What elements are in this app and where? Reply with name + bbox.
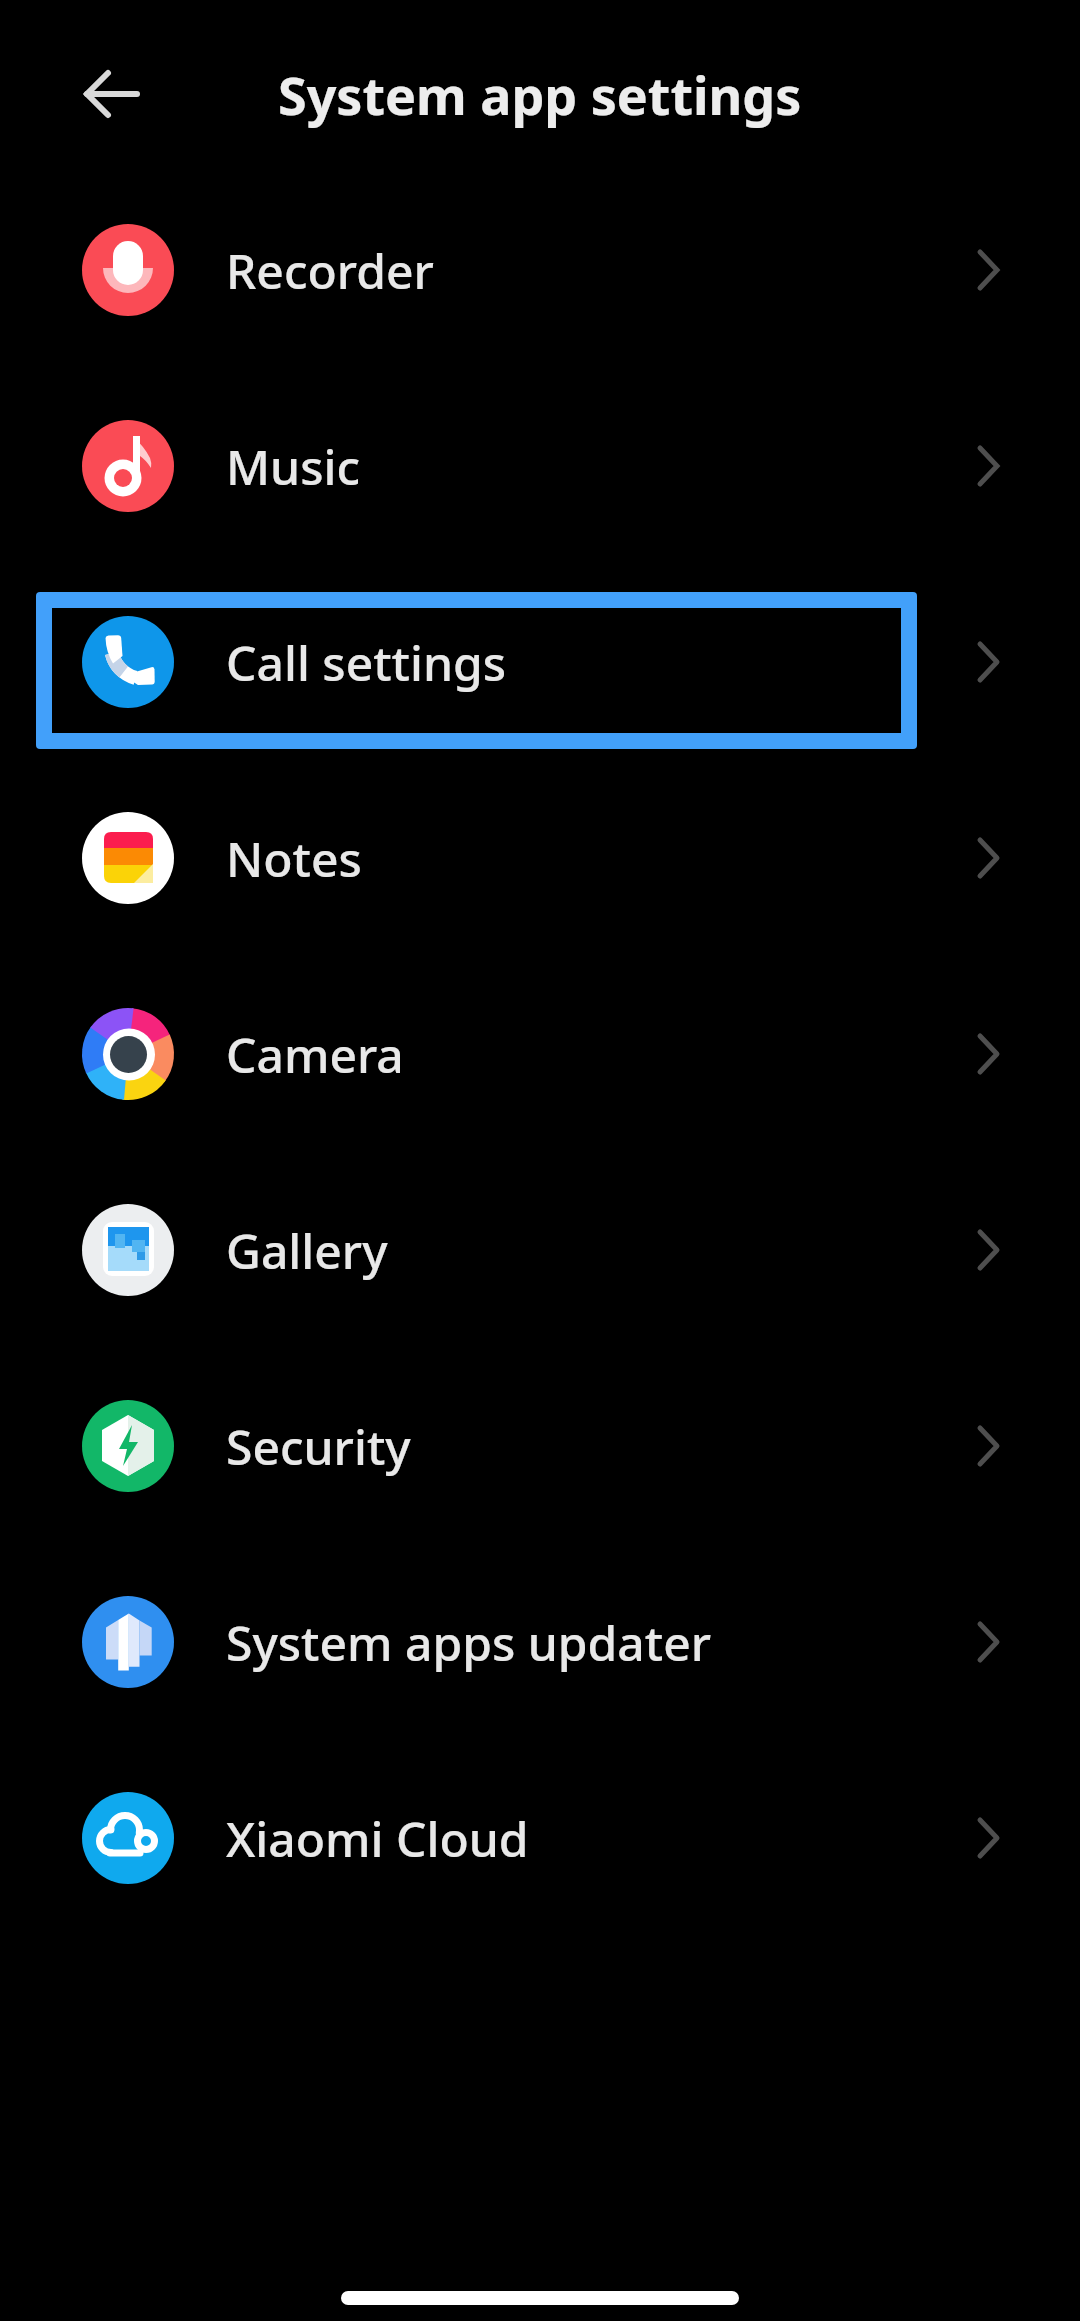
button[interactable]: Call settings — [0, 564, 1080, 760]
button[interactable]: Xiaomi Cloud — [0, 1740, 1080, 1936]
button[interactable]: Notes — [0, 760, 1080, 956]
button[interactable] — [62, 52, 162, 136]
staticText: Music — [226, 434, 361, 499]
staticText: System apps updater — [226, 1610, 712, 1675]
button[interactable]: Music — [0, 368, 1080, 564]
staticText: Gallery — [226, 1218, 388, 1283]
staticText: Recorder — [226, 238, 434, 303]
button[interactable]: System apps updater — [0, 1544, 1080, 1740]
button[interactable]: Recorder — [0, 172, 1080, 368]
staticText: Camera — [226, 1022, 404, 1087]
button[interactable]: Security — [0, 1348, 1080, 1544]
button[interactable]: Camera — [0, 956, 1080, 1152]
staticText: Xiaomi Cloud — [226, 1806, 529, 1871]
staticText: Notes — [226, 826, 362, 891]
button[interactable]: Gallery — [0, 1152, 1080, 1348]
staticText: Security — [226, 1414, 411, 1479]
staticText: Call settings — [226, 630, 507, 695]
staticText: System app settings — [278, 59, 802, 130]
